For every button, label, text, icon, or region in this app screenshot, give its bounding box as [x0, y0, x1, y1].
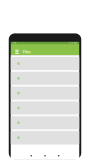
- button[interactable]: Recents: [54, 152, 63, 160]
- button[interactable]: [11, 87, 79, 100]
- button[interactable]: Back: [27, 152, 36, 160]
- button[interactable]: Menu: [14, 50, 20, 54]
- button[interactable]: [11, 131, 79, 144]
- button[interactable]: [11, 72, 79, 85]
- button[interactable]: Home: [40, 152, 49, 160]
- staticText: Files: [23, 49, 31, 54]
- button[interactable]: [11, 57, 79, 70]
- button[interactable]: [11, 116, 79, 129]
- button[interactable]: [11, 101, 79, 114]
